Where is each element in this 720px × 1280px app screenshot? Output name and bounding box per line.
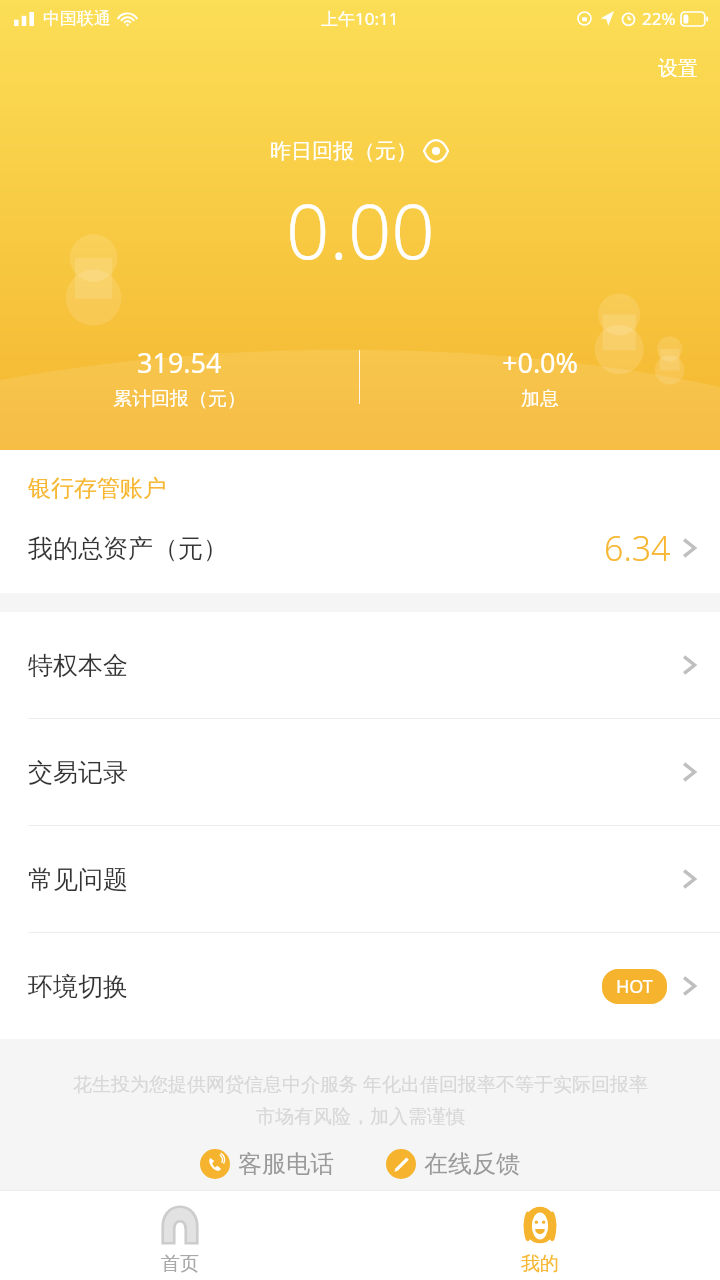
staticText: 中国联通 [43,8,111,29]
button[interactable]: 显示或隐藏金额 [421,139,451,163]
button[interactable]: 特权本金 [0,612,720,718]
staticText: 我的 [521,1252,559,1276]
staticText: 客服电话 [238,1149,334,1179]
button[interactable]: 常见问题 [0,826,720,932]
staticText: 6.34 [604,525,671,571]
staticText: 在线反馈 [424,1149,520,1179]
staticText: 交易记录 [28,757,128,788]
button[interactable]: 我的 [360,1196,720,1276]
button[interactable]: 在线反馈 [382,1145,524,1183]
staticText: 22% [642,7,676,30]
staticText: 首页 [161,1252,199,1276]
staticText: +0.0% [502,344,579,381]
staticText: 累计回报（元） [113,387,246,411]
staticText: 设置 [658,56,698,81]
staticText: 常见问题 [28,864,128,895]
staticText: 319.54 [137,344,222,381]
staticText: 0.00 [286,178,435,282]
staticText: 花生投为您提供网贷信息中介服务 年化出借回报率不等于实际回报率 [73,1071,648,1097]
button[interactable]: 环境切换 [0,933,720,1039]
staticText: 我的总资产（元） [28,533,228,564]
staticText: 市场有风险，加入需谨慎 [256,1105,465,1129]
staticText: 银行存管账户 [28,474,166,503]
button[interactable]: 首页 [0,1196,360,1276]
button[interactable]: +0.0% [360,344,720,411]
button[interactable]: 客服电话 [196,1145,338,1183]
staticText: 上午10:11 [321,7,399,30]
button[interactable]: 银行存管账户 [0,450,720,593]
staticText: 环境切换 [28,971,128,1002]
button[interactable]: 319.54 [0,344,359,411]
staticText: 加息 [521,387,559,411]
button[interactable]: 设置 [636,48,720,89]
button[interactable]: 交易记录 [0,719,720,825]
staticText: HOT [616,974,653,999]
staticText: 特权本金 [28,650,128,681]
staticText: 昨日回报（元） [270,138,417,164]
